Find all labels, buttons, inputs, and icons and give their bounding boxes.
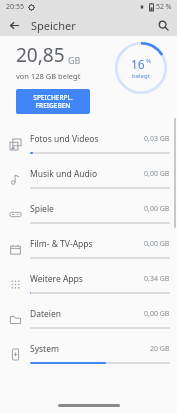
button[interactable]: Weitere Apps xyxy=(0,266,177,301)
staticText: belegt xyxy=(132,72,150,80)
button[interactable]: SPEICHERPL. FREIGEBEN xyxy=(16,89,90,114)
staticText: GB xyxy=(68,54,81,66)
button[interactable]: Suchen xyxy=(153,15,173,35)
staticText: System xyxy=(30,343,59,355)
button[interactable]: Zurück xyxy=(4,15,24,35)
staticText: 16 xyxy=(131,56,145,72)
staticText: Spiele xyxy=(30,203,54,215)
staticText: 0,03 GB xyxy=(144,134,170,144)
staticText: Fotos und Videos xyxy=(30,133,99,145)
staticText: % xyxy=(146,57,151,65)
button[interactable]: Fotos und Videos xyxy=(0,126,177,161)
staticText: 0,00 GB xyxy=(144,239,170,249)
staticText: Film- & TV-Apps xyxy=(30,238,93,250)
staticText: 0,00 GB xyxy=(144,309,170,319)
staticText: Musik und Audio xyxy=(30,168,98,180)
staticText: SPEICHERPL. FREIGEBEN xyxy=(33,93,73,110)
staticText: von 128 GB belegt xyxy=(16,71,81,81)
staticText: 20:55 xyxy=(6,2,24,12)
staticText: Dateien xyxy=(30,308,62,320)
button[interactable]: Film- & TV-Apps xyxy=(0,231,177,266)
staticText: 0,00 GB xyxy=(144,169,170,179)
button[interactable]: Musik und Audio xyxy=(0,161,177,196)
staticText: Weitere Apps xyxy=(30,273,83,285)
staticText: 0,34 GB xyxy=(144,274,170,284)
staticText: Speicher xyxy=(31,18,76,33)
staticText: 20,85 xyxy=(16,42,65,68)
button[interactable]: System xyxy=(0,336,177,371)
staticText: 52 % xyxy=(156,2,172,12)
staticText: 0,00 GB xyxy=(144,204,170,214)
button[interactable]: Spiele xyxy=(0,196,177,231)
button[interactable]: Dateien xyxy=(0,301,177,336)
staticText: 20 GB xyxy=(150,344,170,354)
